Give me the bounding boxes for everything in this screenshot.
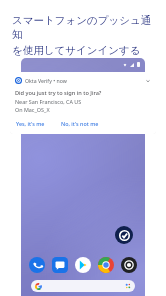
button[interactable]	[31, 280, 135, 292]
button[interactable]: Okta Verify app	[115, 226, 133, 244]
staticText: を使用してサインインする	[12, 44, 141, 57]
button[interactable]: Yes, it's me	[15, 119, 46, 128]
button[interactable]: Expand notification	[144, 77, 151, 84]
staticText: Near San Francisco, CA US	[15, 98, 82, 105]
button[interactable]: No, it's not me	[60, 119, 100, 128]
staticText: Okta Verify • now	[25, 77, 67, 84]
staticText: Yes, it's me	[16, 120, 45, 127]
staticText: Did you just try to sign in to Jira?	[15, 89, 102, 97]
button[interactable]: Play Store	[75, 257, 91, 273]
button[interactable]: Camera	[121, 257, 137, 273]
staticText: On Mac_OS_X	[15, 106, 50, 113]
button[interactable]: Okta Verify • now	[10, 72, 156, 134]
staticText: スマートフォンのプッシュ通知	[12, 14, 156, 42]
button[interactable]: Messages	[52, 257, 68, 273]
button[interactable]: Chrome	[98, 257, 114, 273]
staticText: No, it's not me	[61, 120, 99, 127]
button[interactable]: Phone	[29, 257, 45, 273]
